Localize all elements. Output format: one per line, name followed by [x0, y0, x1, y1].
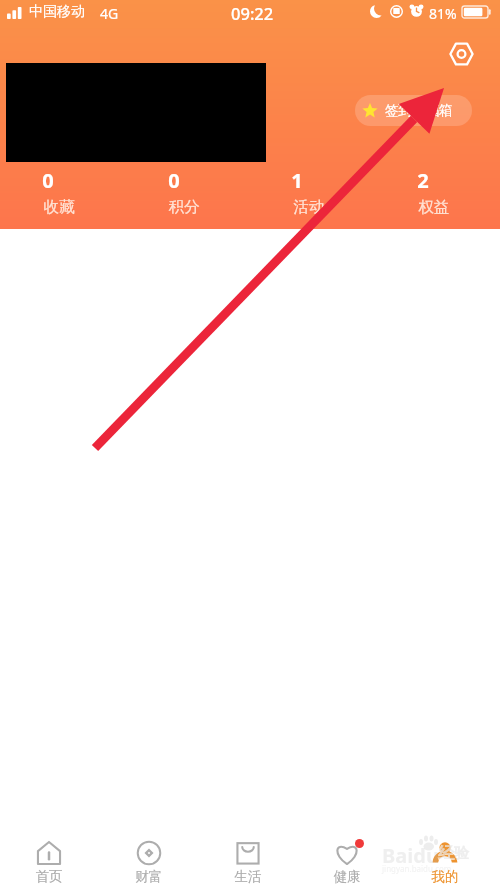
staticText: 财富 [107, 868, 191, 885]
staticText: 生活 [206, 868, 290, 885]
button[interactable]: 1 [267, 166, 351, 222]
button[interactable]: Settings [446, 39, 477, 69]
button[interactable]: 0 [142, 166, 226, 222]
staticText: 0 [6, 167, 90, 194]
button[interactable]: 健康 [305, 825, 389, 889]
button[interactable]: 生活 [206, 825, 290, 889]
staticText: 中国移动 [29, 3, 85, 21]
button[interactable]: 财富 [107, 825, 191, 889]
staticText: 1 [255, 167, 339, 194]
staticText: 经验 [438, 843, 472, 864]
button[interactable]: 我的 [403, 825, 487, 889]
staticText: 权益 [392, 197, 476, 217]
staticText: 首页 [7, 868, 91, 885]
staticText: 我的 [403, 868, 487, 885]
staticText: 0 [132, 167, 216, 194]
staticText: 积分 [142, 197, 226, 217]
staticText: 收藏 [17, 197, 101, 217]
staticText: Baidu [382, 842, 439, 869]
staticText: jingyan.baidu.com [382, 863, 452, 874]
staticText: 活动 [267, 197, 351, 217]
staticText: 健康 [305, 868, 389, 885]
staticText: 81% [429, 4, 457, 23]
staticText: 经验 [439, 844, 469, 863]
staticText: 4G [100, 4, 119, 23]
staticText: 09:22 [231, 2, 274, 24]
staticText: 2 [381, 167, 465, 194]
button[interactable]: 0 [17, 166, 101, 222]
button[interactable]: 首页 [7, 825, 91, 889]
staticText: 签到领福箱 [385, 102, 453, 119]
button[interactable]: 签到领福箱 [355, 95, 472, 126]
button[interactable]: 2 [392, 166, 476, 222]
